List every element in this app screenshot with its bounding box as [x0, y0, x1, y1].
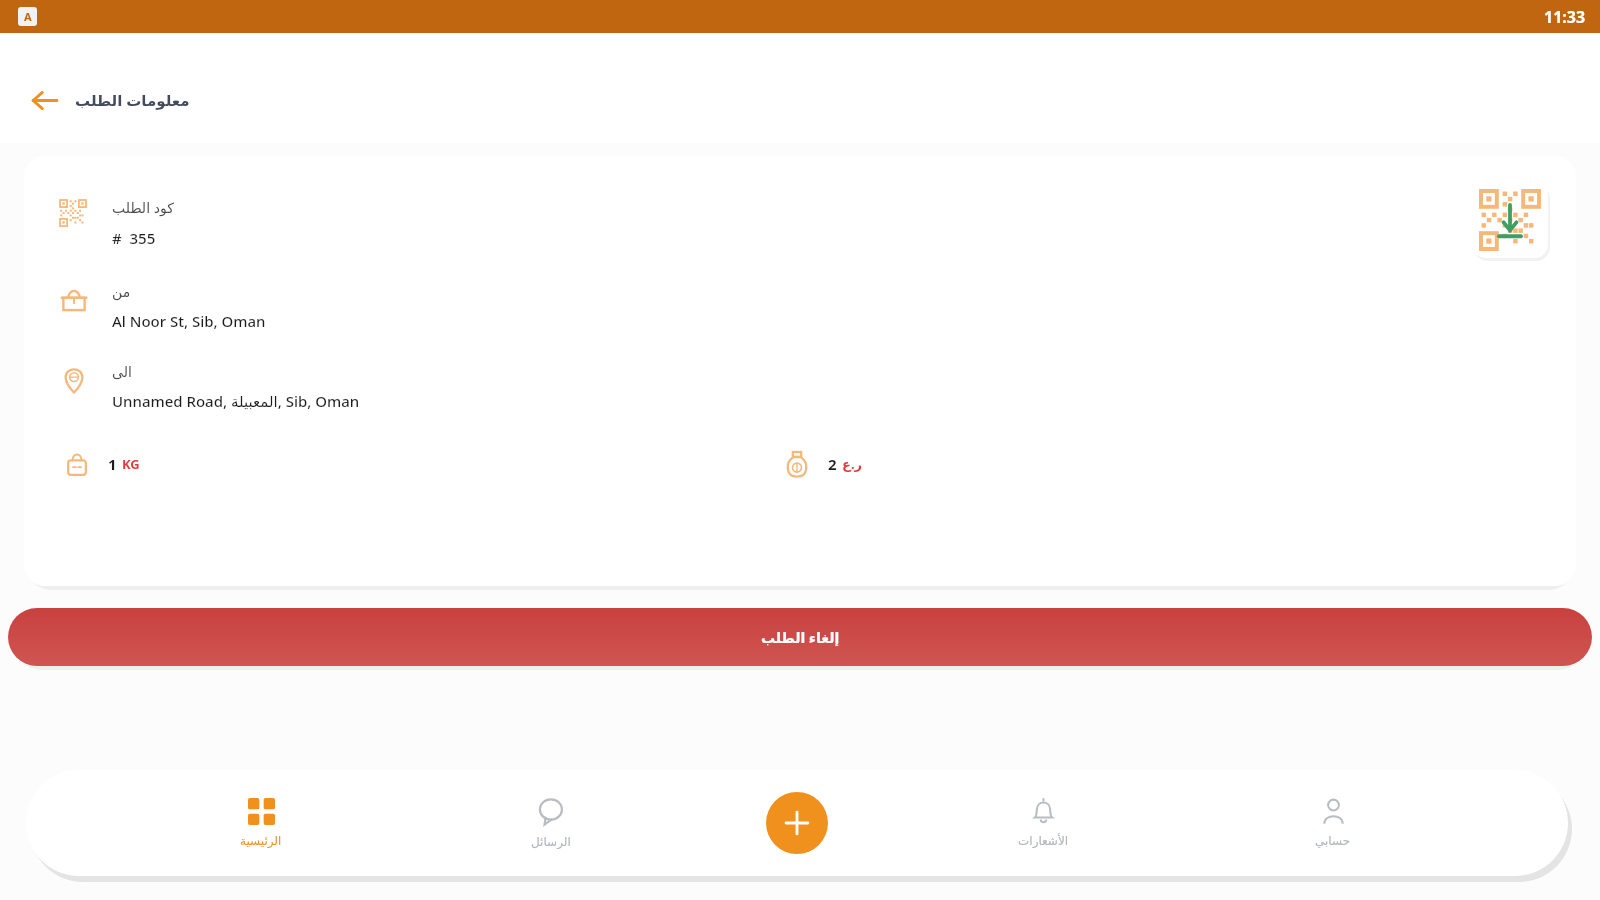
staticText: 11:33 — [1544, 6, 1586, 28]
button[interactable]: Back — [26, 82, 62, 118]
staticText: الرسائل — [531, 835, 571, 849]
staticText: معلومات الطلب — [75, 90, 190, 110]
staticText: 2 — [828, 454, 837, 474]
button[interactable]: الرسائل — [476, 797, 626, 849]
staticText: KG — [122, 455, 140, 473]
staticText: # 355 — [112, 228, 156, 248]
button[interactable]: كود الطلب — [24, 156, 1576, 586]
button[interactable]: Create new order — [766, 792, 828, 854]
button[interactable]: الرئيسية — [186, 798, 336, 848]
staticText: الى — [112, 364, 132, 380]
staticText: A — [24, 9, 32, 24]
staticText: إلغاء الطلب — [761, 628, 840, 647]
staticText: حسابي — [1315, 834, 1351, 848]
staticText: Unnamed Road, المعبيلة, Sib, Oman — [112, 391, 360, 411]
button[interactable]: الأشعارات — [968, 798, 1118, 848]
button[interactable]: حسابي — [1258, 798, 1408, 848]
staticText: الرئيسية — [240, 834, 282, 848]
staticText: 1 — [108, 454, 117, 474]
button[interactable]: Download QR code — [1472, 182, 1548, 258]
staticText: ر.ع — [842, 455, 863, 473]
button[interactable]: إلغاء الطلب — [8, 608, 1592, 666]
staticText: من — [112, 284, 131, 300]
staticText: كود الطلب — [112, 198, 174, 217]
staticText: الأشعارات — [1018, 834, 1069, 848]
staticText: Al Noor St, Sib, Oman — [112, 311, 266, 331]
